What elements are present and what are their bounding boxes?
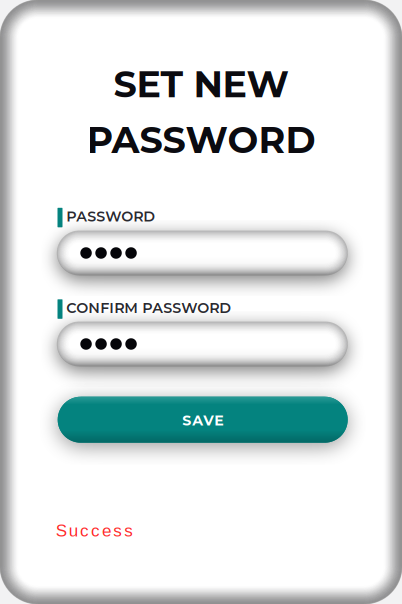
staticText: CONFIRM PASSWORD	[66, 299, 231, 317]
staticText: SET NEW	[113, 62, 288, 106]
button[interactable]: Password entry	[57, 322, 347, 366]
staticText: Success	[49, 521, 140, 540]
button[interactable]: Password entry	[57, 231, 347, 275]
button[interactable]: SAVE	[58, 397, 348, 443]
staticText: PASSWORD	[86, 118, 315, 162]
staticText: PASSWORD	[66, 208, 155, 225]
staticText: SAVE	[177, 412, 228, 429]
